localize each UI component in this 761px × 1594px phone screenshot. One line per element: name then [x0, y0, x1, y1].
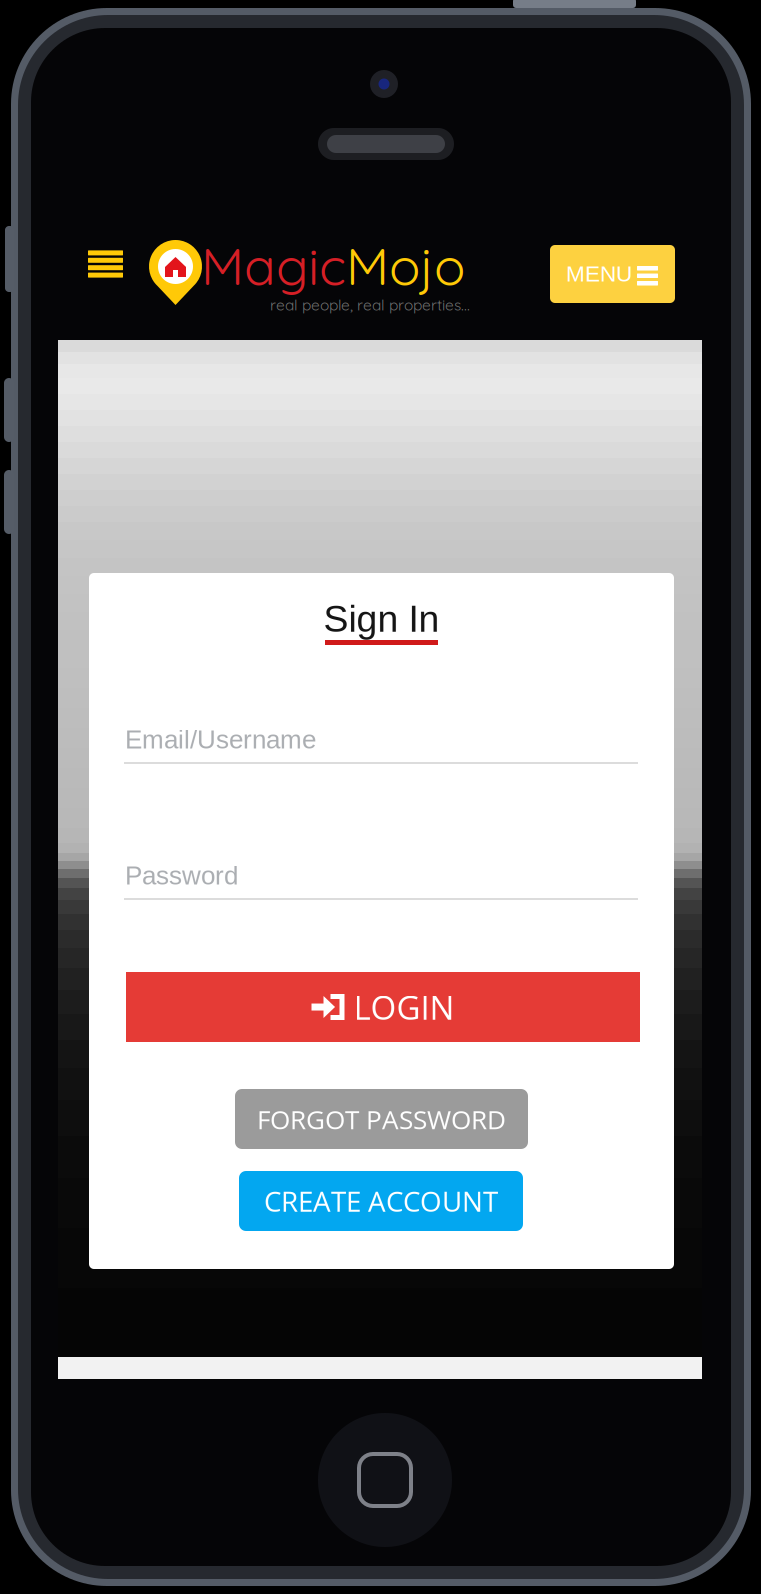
button[interactable]: MagicMojo home [149, 240, 519, 326]
staticText: MENU [566, 261, 632, 286]
staticText: Sign In [323, 598, 439, 640]
staticText: Password [125, 861, 238, 890]
button[interactable]: Open navigation [74, 233, 137, 295]
button[interactable]: FORGOT PASSWORD [235, 1089, 528, 1149]
button[interactable]: LOGIN [126, 972, 640, 1042]
button[interactable]: CREATE ACCOUNT [239, 1171, 523, 1231]
staticText: Mojo [346, 233, 465, 298]
staticText: CREATE ACCOUNT [264, 1182, 498, 1220]
button[interactable]: MENU [550, 245, 675, 303]
staticText: FORGOT PASSWORD [257, 1101, 506, 1137]
staticText: Magic [201, 233, 346, 298]
staticText: Email/Username [125, 725, 316, 754]
button[interactable]: Home [318, 1413, 452, 1547]
staticText: real people, real properties... [270, 295, 470, 314]
staticText: LOGIN [353, 984, 454, 1029]
